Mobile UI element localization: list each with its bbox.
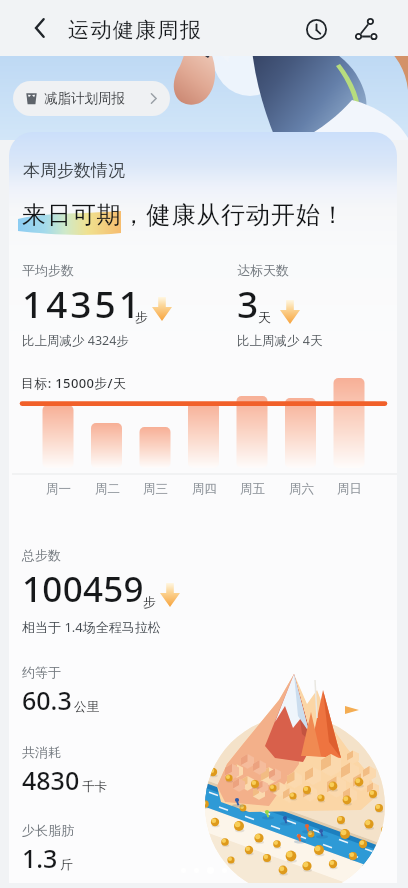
staticText: 步 [135,309,148,325]
staticText: 共消耗 [22,744,61,760]
staticText: 来日可期，健康从行动开始！ [22,200,346,230]
staticText: 天 [258,309,271,325]
button[interactable]: Share [346,9,386,49]
staticText: 运动健康周报 [68,17,203,43]
staticText: 总步数 [22,547,61,563]
staticText: 周二 [95,481,120,497]
staticText: 60.3 [22,683,72,717]
staticText: 约等于 [22,664,61,680]
button[interactable]: Back [20,8,60,48]
staticText: 本周步数情况 [23,160,125,181]
staticText: 周三 [143,481,168,497]
staticText: 千卡 [82,779,107,795]
staticText: 1.3 [22,841,58,875]
staticText: 100459 [22,565,144,613]
staticText: 步 [143,594,156,610]
staticText: 3 [237,278,262,328]
staticText: 周四 [192,481,217,497]
staticText: 周六 [289,481,314,497]
staticText: 平均步数 [22,262,74,278]
staticText: 斤 [60,857,73,873]
staticText: 比上周减少 4324步 [22,332,129,349]
staticText: 周一 [46,481,71,497]
staticText: 周日 [337,481,362,497]
staticText: 减脂计划周报 [44,90,125,107]
staticText: 相当于 1.4场全程马拉松 [22,618,161,636]
button[interactable]: History [296,9,336,49]
button[interactable]: 减脂计划周报 [13,81,170,116]
staticText: 14351 [22,278,143,328]
staticText: 4830 [22,763,80,797]
staticText: 公里 [74,699,99,715]
staticText: 比上周减少 4天 [237,332,323,349]
staticText: 达标天数 [237,262,289,278]
staticText: 目标: 15000步/天 [21,374,127,392]
staticText: 周五 [240,481,265,497]
staticText: 少长脂肪 [22,822,74,838]
